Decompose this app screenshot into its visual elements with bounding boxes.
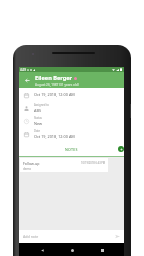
button[interactable]: NOTES <box>19 141 124 157</box>
staticText: Status <box>34 116 42 120</box>
staticText: Eileen Berger <box>35 74 73 82</box>
button[interactable]: Date <box>19 127 124 140</box>
staticText: New <box>34 121 42 126</box>
button[interactable]: Home <box>67 245 77 255</box>
staticText: Date <box>34 129 40 133</box>
button[interactable]: Send <box>113 232 122 241</box>
staticText: Add note <box>23 234 39 239</box>
staticText: August 26, 1987 (31 years old) <box>35 83 79 87</box>
staticText: 10/19/2018 6:43 PM <box>81 161 106 165</box>
staticText: ABS <box>34 108 41 113</box>
button[interactable]: Oct 19, 2018, 12:00 AM <box>19 88 124 101</box>
staticText: Follow-up <box>23 161 40 166</box>
button[interactable]: Back <box>37 245 47 255</box>
button[interactable]: Back <box>19 72 35 88</box>
staticText: 4:29 <box>20 68 26 72</box>
staticText: Assigned to <box>34 103 49 107</box>
button[interactable]: Recent apps <box>97 245 107 255</box>
staticText: Oct 19, 2018, 12:00 AM <box>34 134 75 139</box>
staticText: NOTES <box>65 147 78 152</box>
staticText: demo <box>23 167 32 171</box>
button[interactable]: Assigned to <box>19 101 124 114</box>
button[interactable]: Status <box>19 114 124 127</box>
button[interactable]: Add note <box>118 146 124 152</box>
staticText: Oct 19, 2018, 12:00 AM <box>34 92 75 97</box>
button[interactable]: Follow-up <box>20 158 108 172</box>
